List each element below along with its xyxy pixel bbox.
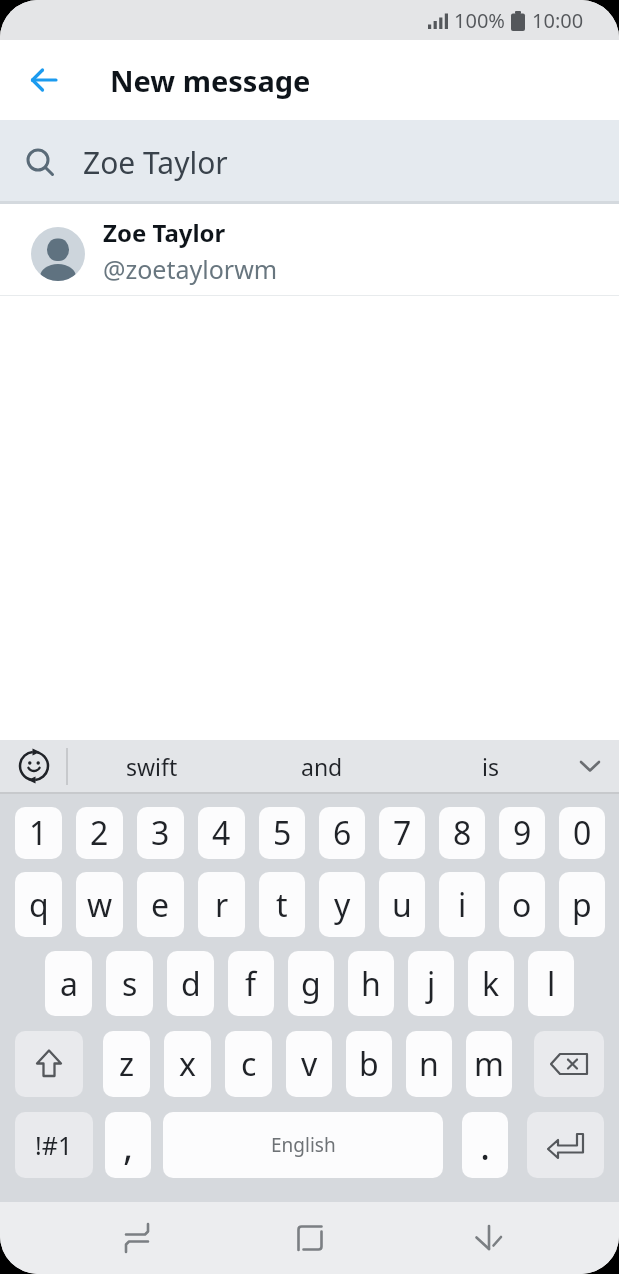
button[interactable]: swift bbox=[67, 740, 237, 792]
button[interactable]: j bbox=[408, 951, 454, 1016]
staticText: w bbox=[87, 883, 113, 927]
button[interactable]: x bbox=[164, 1031, 211, 1097]
button[interactable]: 2 bbox=[76, 807, 123, 859]
staticText: swift bbox=[126, 751, 178, 782]
button[interactable] bbox=[527, 1112, 604, 1178]
button[interactable]: n bbox=[406, 1031, 452, 1097]
staticText: New message bbox=[110, 61, 311, 100]
button[interactable]: is bbox=[406, 740, 575, 792]
button[interactable]: 3 bbox=[137, 807, 184, 859]
staticText: x bbox=[179, 1042, 196, 1086]
staticText: 7 bbox=[393, 811, 412, 855]
button[interactable]: u bbox=[379, 872, 425, 937]
staticText: !#1 bbox=[35, 1128, 73, 1162]
button[interactable]: z bbox=[103, 1031, 150, 1097]
button[interactable]: and bbox=[237, 740, 406, 792]
button[interactable]: Zoe Taylor bbox=[0, 204, 619, 295]
staticText: k bbox=[482, 962, 500, 1006]
staticText: 100% bbox=[454, 7, 505, 34]
button[interactable]: !#1 bbox=[15, 1112, 93, 1178]
staticText: p bbox=[572, 883, 592, 927]
button[interactable]: c bbox=[225, 1031, 272, 1097]
staticText: 10:00 bbox=[532, 7, 584, 34]
button[interactable]: y bbox=[319, 872, 365, 937]
button[interactable]: 5 bbox=[259, 807, 305, 859]
button[interactable]: h bbox=[348, 951, 394, 1016]
button[interactable]: Zoe Taylor bbox=[0, 120, 619, 201]
button[interactable] bbox=[466, 1220, 502, 1256]
button[interactable]: 0 bbox=[559, 807, 605, 859]
button[interactable]: 4 bbox=[198, 807, 245, 859]
button[interactable]: 9 bbox=[499, 807, 545, 859]
staticText: is bbox=[482, 751, 499, 782]
button[interactable]: b bbox=[346, 1031, 392, 1097]
button[interactable]: o bbox=[499, 872, 545, 937]
button[interactable]: a bbox=[45, 951, 92, 1016]
button[interactable]: 1 bbox=[15, 807, 62, 859]
staticText: 5 bbox=[273, 811, 292, 855]
button[interactable]: q bbox=[15, 872, 62, 937]
button[interactable] bbox=[15, 1031, 83, 1097]
button[interactable] bbox=[0, 740, 67, 792]
button[interactable]: 7 bbox=[379, 807, 425, 859]
staticText: s bbox=[122, 962, 138, 1006]
staticText: 9 bbox=[513, 811, 532, 855]
staticText: Zoe Taylor bbox=[103, 216, 226, 249]
button[interactable]: p bbox=[559, 872, 605, 937]
button[interactable]: d bbox=[167, 951, 214, 1016]
staticText: u bbox=[392, 883, 412, 927]
staticText: n bbox=[419, 1042, 439, 1086]
button[interactable]: v bbox=[286, 1031, 332, 1097]
staticText: m bbox=[474, 1042, 504, 1086]
staticText: , bbox=[123, 1119, 134, 1171]
staticText: English bbox=[271, 1132, 336, 1158]
staticText: g bbox=[301, 962, 321, 1006]
button[interactable]: s bbox=[106, 951, 153, 1016]
staticText: v bbox=[301, 1042, 318, 1086]
staticText: t bbox=[276, 883, 288, 927]
staticText: 6 bbox=[333, 811, 352, 855]
staticText: @zoetaylorwm bbox=[103, 252, 278, 286]
staticText: 0 bbox=[573, 811, 592, 855]
button[interactable] bbox=[119, 1220, 155, 1256]
staticText: o bbox=[512, 883, 532, 927]
button[interactable] bbox=[18, 54, 70, 106]
button[interactable]: . bbox=[462, 1112, 508, 1178]
button[interactable]: , bbox=[105, 1112, 151, 1178]
staticText: z bbox=[119, 1042, 135, 1086]
staticText: h bbox=[361, 962, 381, 1006]
staticText: y bbox=[334, 883, 351, 927]
button[interactable]: k bbox=[468, 951, 514, 1016]
staticText: Zoe Taylor bbox=[83, 142, 228, 183]
staticText: . bbox=[480, 1119, 491, 1171]
staticText: b bbox=[359, 1042, 379, 1086]
staticText: a bbox=[60, 962, 78, 1006]
button[interactable] bbox=[534, 1031, 604, 1097]
button[interactable]: w bbox=[76, 872, 123, 937]
staticText: q bbox=[29, 883, 49, 927]
button[interactable]: r bbox=[198, 872, 245, 937]
button[interactable]: l bbox=[528, 951, 574, 1016]
button[interactable]: e bbox=[137, 872, 184, 937]
button[interactable] bbox=[292, 1220, 328, 1256]
staticText: 1 bbox=[29, 811, 48, 855]
staticText: and bbox=[301, 751, 343, 782]
staticText: 2 bbox=[90, 811, 109, 855]
staticText: e bbox=[151, 883, 170, 927]
button[interactable]: i bbox=[439, 872, 485, 937]
staticText: 4 bbox=[212, 811, 231, 855]
staticText: c bbox=[241, 1042, 257, 1086]
staticText: d bbox=[181, 962, 201, 1006]
staticText: r bbox=[215, 883, 229, 927]
staticText: l bbox=[547, 962, 556, 1006]
staticText: j bbox=[427, 962, 436, 1006]
button[interactable]: m bbox=[466, 1031, 512, 1097]
button[interactable]: 6 bbox=[319, 807, 365, 859]
button[interactable]: f bbox=[228, 951, 274, 1016]
staticText: f bbox=[245, 962, 257, 1006]
button[interactable]: 8 bbox=[439, 807, 485, 859]
button[interactable]: t bbox=[259, 872, 305, 937]
button[interactable]: English bbox=[163, 1112, 443, 1178]
button[interactable] bbox=[575, 740, 619, 792]
button[interactable]: g bbox=[288, 951, 334, 1016]
